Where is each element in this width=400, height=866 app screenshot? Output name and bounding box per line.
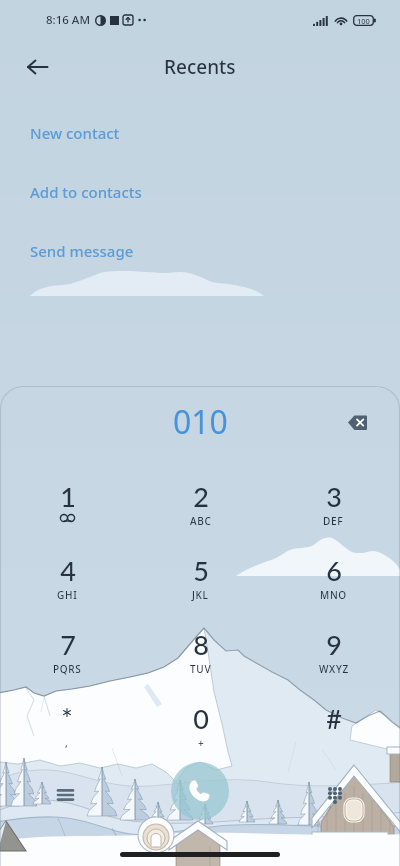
button[interactable]: * <box>0 702 134 776</box>
staticText: 4 <box>60 554 76 586</box>
button[interactable]: Send message <box>0 234 400 268</box>
staticText: WXYZ <box>319 662 349 676</box>
button[interactable]: # <box>267 702 400 776</box>
button[interactable]: Keypad <box>315 775 355 815</box>
button[interactable]: 6 <box>267 554 400 628</box>
button[interactable]: Add to contacts <box>0 175 400 209</box>
button[interactable]: 5 <box>134 554 267 628</box>
staticText: JKL <box>192 588 209 602</box>
staticText: * <box>61 702 73 734</box>
staticText: 0 <box>193 702 209 734</box>
staticText: ABC <box>190 514 212 528</box>
button[interactable]: 8 <box>134 628 267 702</box>
button[interactable]: New contact <box>0 116 400 150</box>
button[interactable]: 2 <box>134 480 267 554</box>
button[interactable]: 3 <box>267 480 400 554</box>
staticText: PQRS <box>53 662 82 676</box>
staticText: 1 <box>60 480 76 512</box>
button[interactable]: 0 <box>134 702 267 776</box>
staticText: Add to contacts <box>30 182 142 202</box>
staticText: 2 <box>193 480 209 512</box>
button[interactable]: 9 <box>267 628 400 702</box>
button[interactable]: 4 <box>0 554 134 628</box>
button[interactable]: 1 <box>0 480 134 554</box>
staticText: 5 <box>193 554 209 586</box>
staticText: TUV <box>190 662 212 676</box>
staticText: DEF <box>323 514 344 528</box>
button[interactable]: Call <box>171 762 229 820</box>
staticText: 9 <box>326 628 342 660</box>
staticText: Recents <box>164 54 236 80</box>
staticText: 7 <box>60 628 76 660</box>
staticText: # <box>326 702 342 734</box>
staticText: , <box>65 736 69 750</box>
staticText: 010 <box>173 400 228 444</box>
staticText: 8:16 AM <box>46 12 90 28</box>
staticText: MNO <box>320 588 347 602</box>
staticText: 100 <box>357 16 370 26</box>
staticText: 8 <box>193 628 209 660</box>
staticText: 6 <box>326 554 342 586</box>
button[interactable]: 7 <box>0 628 134 702</box>
button[interactable]: Back <box>17 47 57 87</box>
button[interactable]: Backspace <box>339 404 375 440</box>
staticText: 3 <box>326 480 342 512</box>
staticText: GHI <box>57 588 78 602</box>
staticText: Send message <box>30 241 134 261</box>
button[interactable]: Call history <box>45 775 85 815</box>
staticText: New contact <box>30 123 120 143</box>
staticText: + <box>198 736 205 750</box>
